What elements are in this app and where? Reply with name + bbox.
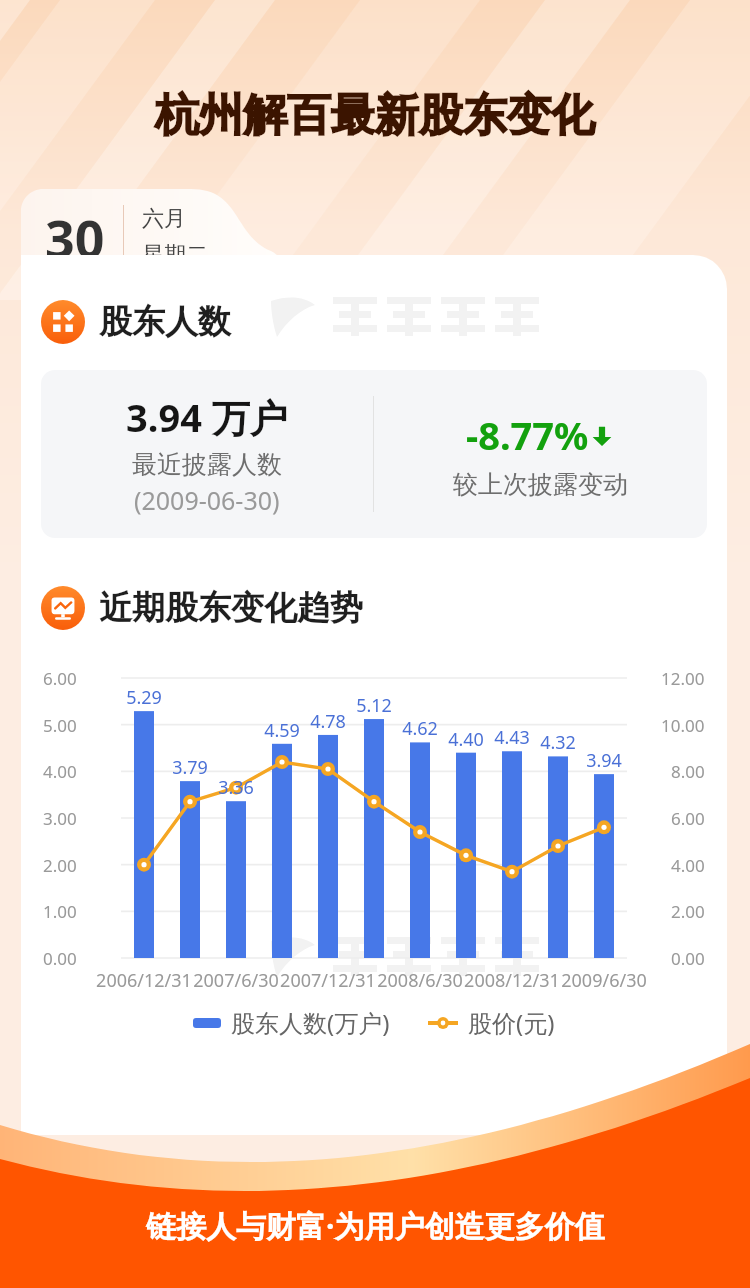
staticText: 2007/12/31 — [280, 968, 376, 993]
staticText: 1.00 — [43, 900, 77, 923]
staticText: 8.00 — [671, 760, 705, 783]
staticText: 3.79 — [169, 755, 211, 780]
staticText: 星期二 — [142, 241, 208, 269]
staticText: 0.00 — [43, 947, 77, 970]
staticText: 股东人数(万户) — [231, 1006, 390, 1039]
staticText: 10.00 — [661, 714, 705, 737]
staticText: 较上次披露变动 — [453, 469, 628, 500]
staticText: 近期股东变化趋势 — [99, 587, 363, 629]
staticText: 2009/6/30 — [556, 968, 652, 993]
staticText: 最近披露人数 — [132, 449, 282, 480]
staticText: 30 — [45, 202, 105, 273]
staticText: 3.00 — [43, 807, 77, 830]
button[interactable]: 股价(元) — [428, 1006, 555, 1039]
staticText: 4.62 — [399, 716, 441, 741]
staticText: 4.00 — [43, 760, 77, 783]
staticText: 0.00 — [671, 947, 705, 970]
staticText: (2009-06-30) — [134, 483, 280, 517]
staticText: 3.36 — [215, 775, 257, 800]
staticText: 3.94 — [583, 748, 625, 773]
staticText: -8.77% — [466, 409, 589, 461]
staticText: 4.59 — [261, 718, 303, 743]
staticText: 5.29 — [123, 685, 165, 710]
staticText: 链接人与财富·为用户创造更多价值 — [146, 1205, 605, 1246]
staticText: 2008/6/30 — [372, 968, 468, 993]
staticText: 4.40 — [445, 727, 487, 752]
staticText: 3.94 万户 — [126, 391, 288, 443]
button[interactable]: 近期股东变化趋势 — [21, 586, 727, 630]
staticText: 杭州解百最新股东变化 — [155, 88, 595, 143]
staticText: 12.00 — [661, 667, 705, 690]
button[interactable]: 股东人数 — [21, 300, 727, 344]
staticText: 2.00 — [671, 900, 705, 923]
staticText: 5.00 — [43, 714, 77, 737]
staticText: 2007/6/30 — [188, 968, 284, 993]
button[interactable]: 股东人数(万户) — [193, 1006, 390, 1039]
staticText: 4.78 — [307, 709, 349, 734]
staticText: 5.12 — [353, 693, 395, 718]
staticText: 6.00 — [43, 667, 77, 690]
staticText: 2008/12/31 — [464, 968, 560, 993]
staticText: 2006/12/31 — [96, 968, 192, 993]
staticText: 6.00 — [671, 807, 705, 830]
staticText: 股价(元) — [468, 1006, 555, 1039]
button[interactable]: 3.94 万户 — [41, 370, 707, 538]
staticText: 2.00 — [43, 854, 77, 877]
staticText: 六月 — [142, 205, 186, 233]
staticText: 4.32 — [537, 730, 579, 755]
staticText: 4.00 — [671, 854, 705, 877]
staticText: 股东人数 — [99, 301, 231, 343]
staticText: 4.43 — [491, 725, 533, 750]
